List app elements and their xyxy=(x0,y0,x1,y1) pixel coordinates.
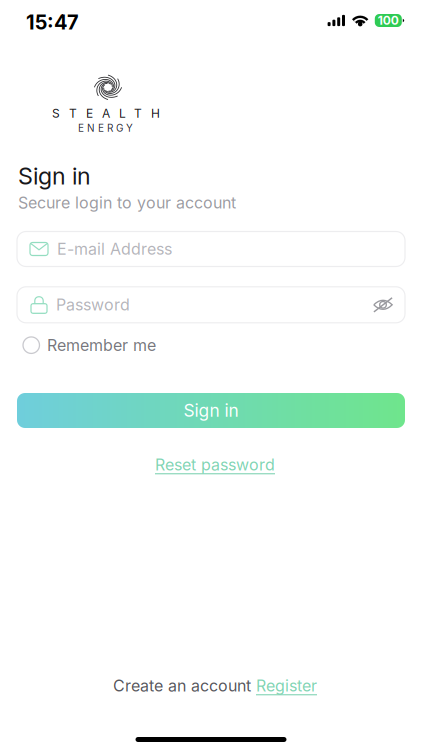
button[interactable]: Remember me xyxy=(23,329,156,361)
staticText: 15:47 xyxy=(26,10,79,34)
staticText: Create an account xyxy=(113,676,251,695)
staticText: E-mail Address xyxy=(57,239,172,259)
staticText: Reset password xyxy=(155,455,275,474)
button[interactable]: Register xyxy=(256,676,317,695)
staticText: 100 xyxy=(378,13,399,28)
button[interactable]: Reset password xyxy=(149,449,281,480)
button[interactable]: Sign in xyxy=(17,393,405,428)
staticText: Password xyxy=(56,295,130,314)
button[interactable]: Show password xyxy=(368,288,398,321)
staticText: Remember me xyxy=(47,335,156,355)
staticText: STEALTH xyxy=(52,106,160,120)
staticText: Sign in xyxy=(183,400,238,421)
staticText: Sign in xyxy=(18,162,91,190)
staticText: Secure login to your account xyxy=(18,193,236,212)
staticText: E N E R G Y xyxy=(78,122,133,134)
staticText: Register xyxy=(256,676,317,695)
